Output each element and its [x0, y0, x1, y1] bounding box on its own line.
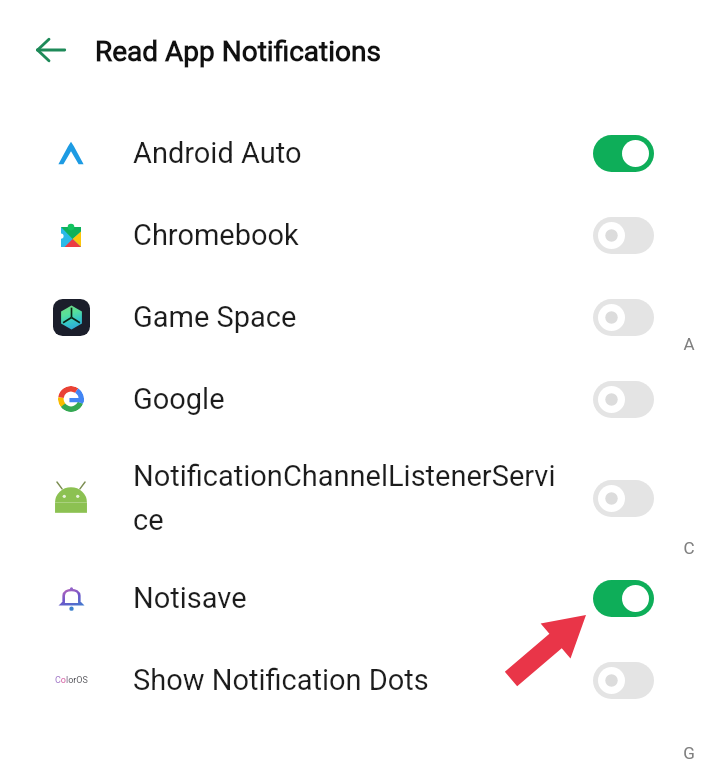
staticText: C — [683, 538, 695, 558]
button[interactable]: Disabled — [593, 381, 654, 418]
staticText: A — [683, 334, 695, 354]
button[interactable]: Notisave — [0, 557, 720, 639]
button[interactable]: Disabled — [593, 662, 654, 699]
staticText: Chromebook — [133, 218, 299, 252]
staticText: NotificationChannelListenerService — [133, 459, 557, 537]
staticText: Read App Notifications — [95, 35, 381, 68]
button[interactable]: Chromebook — [0, 194, 720, 276]
staticText: ColorOS — [55, 675, 88, 686]
button[interactable]: G — [675, 741, 703, 765]
button[interactable]: Disabled — [593, 480, 654, 517]
button[interactable]: ColorOS — [0, 639, 720, 721]
staticText: Game Space — [133, 300, 297, 334]
button[interactable]: Disabled — [593, 299, 654, 336]
staticText: Android Auto — [133, 136, 302, 170]
button[interactable]: Android Auto — [0, 112, 720, 194]
staticText: Google — [133, 382, 225, 416]
staticText: Show Notification Dots — [133, 663, 429, 697]
button[interactable]: Google — [0, 358, 720, 440]
button[interactable]: Back — [26, 26, 74, 74]
button[interactable]: Disabled — [593, 217, 654, 254]
button[interactable]: C — [675, 536, 703, 560]
button[interactable]: NotificationChannelListenerService — [0, 438, 720, 558]
button[interactable]: Game Space — [0, 276, 720, 358]
button[interactable]: Enabled — [593, 580, 654, 617]
button[interactable]: Enabled — [593, 135, 654, 172]
button[interactable]: A — [675, 332, 703, 356]
staticText: G — [683, 743, 695, 763]
staticText: Notisave — [133, 581, 247, 615]
